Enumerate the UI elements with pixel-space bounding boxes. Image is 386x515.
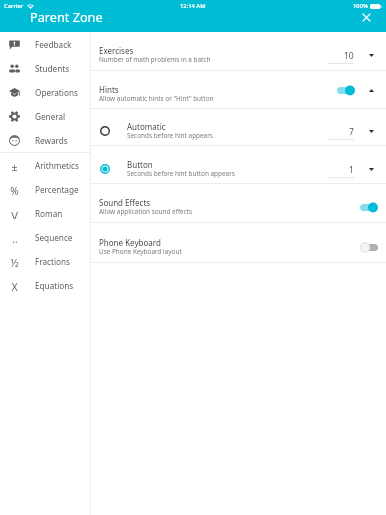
staticText: Arithmetics bbox=[35, 160, 79, 171]
staticText: Hints bbox=[99, 84, 119, 95]
staticText: Fractions bbox=[35, 256, 70, 267]
button[interactable]: Exercises bbox=[91, 32, 386, 70]
button[interactable]: V bbox=[0, 201, 90, 225]
button[interactable]: X bbox=[0, 273, 90, 297]
button[interactable]: Feedback bbox=[0, 32, 90, 56]
button[interactable]: Toggle bbox=[360, 239, 378, 255]
button[interactable]: ½ bbox=[0, 249, 90, 273]
button[interactable]: Select option bbox=[91, 109, 386, 145]
button[interactable]: Students bbox=[0, 56, 90, 80]
staticText: 10 bbox=[344, 50, 354, 62]
staticText: Carrier bbox=[4, 2, 24, 10]
staticText: Rewards bbox=[35, 135, 68, 146]
staticText: .. bbox=[12, 232, 18, 243]
button[interactable]: Close bbox=[358, 9, 374, 25]
button[interactable]: 7 bbox=[328, 120, 379, 134]
staticText: ± bbox=[11, 160, 18, 171]
button[interactable]: General bbox=[0, 104, 90, 128]
staticText: Roman bbox=[35, 208, 63, 219]
button[interactable]: Collapse bbox=[364, 84, 379, 97]
staticText: X bbox=[11, 280, 18, 291]
staticText: General bbox=[35, 111, 66, 122]
button[interactable]: Hints bbox=[91, 71, 386, 108]
staticText: Seconds before hint appears bbox=[127, 131, 213, 140]
staticText: 1 bbox=[349, 164, 354, 176]
staticText: Allow application sound effects bbox=[99, 207, 193, 216]
button[interactable]: 1 bbox=[328, 158, 379, 172]
staticText: 7 bbox=[349, 126, 354, 138]
staticText: ½ bbox=[10, 256, 19, 267]
staticText: Sequence bbox=[35, 232, 73, 243]
staticText: V bbox=[11, 208, 18, 219]
button[interactable]: 10 bbox=[328, 44, 379, 58]
staticText: Allow automatic hints or "Hint" button bbox=[99, 94, 214, 103]
button[interactable]: Toggle bbox=[360, 199, 378, 215]
staticText: Parent Zone bbox=[30, 8, 103, 25]
staticText: 100% bbox=[353, 2, 368, 10]
button[interactable]: Expand bbox=[364, 163, 379, 176]
button[interactable]: Toggle bbox=[337, 82, 355, 98]
staticText: Automatic bbox=[127, 121, 166, 132]
button[interactable]: Expand bbox=[364, 125, 379, 138]
button[interactable]: Select option bbox=[99, 163, 111, 175]
button[interactable]: Select option bbox=[99, 125, 111, 137]
staticText: Percentage bbox=[35, 184, 79, 195]
staticText: Sound Effects bbox=[99, 197, 151, 208]
staticText: Exercises bbox=[99, 45, 134, 56]
staticText: Operations bbox=[35, 87, 78, 98]
button[interactable]: % bbox=[0, 177, 90, 201]
staticText: 12:14 AM bbox=[180, 2, 206, 10]
staticText: Feedback bbox=[35, 39, 72, 50]
staticText: % bbox=[10, 184, 19, 195]
staticText: Phone Keyboard bbox=[99, 237, 161, 248]
button[interactable]: Sound Effects bbox=[91, 184, 386, 222]
button[interactable]: Operations bbox=[0, 80, 90, 104]
button[interactable]: Expand bbox=[364, 49, 379, 62]
button[interactable]: Phone Keyboard bbox=[91, 223, 386, 262]
button[interactable]: Select option bbox=[91, 146, 386, 183]
staticText: Equations bbox=[35, 280, 74, 291]
staticText: Students bbox=[35, 63, 70, 74]
staticText: Number of math problems in a batch bbox=[99, 55, 211, 64]
staticText: Button bbox=[127, 159, 153, 170]
staticText: Seconds before hint button appears bbox=[127, 169, 235, 178]
staticText: Use Phone Keyboard layout bbox=[99, 247, 182, 256]
button[interactable]: ± bbox=[0, 153, 90, 177]
button[interactable]: .. bbox=[0, 225, 90, 249]
button[interactable]: Rewards bbox=[0, 128, 90, 152]
